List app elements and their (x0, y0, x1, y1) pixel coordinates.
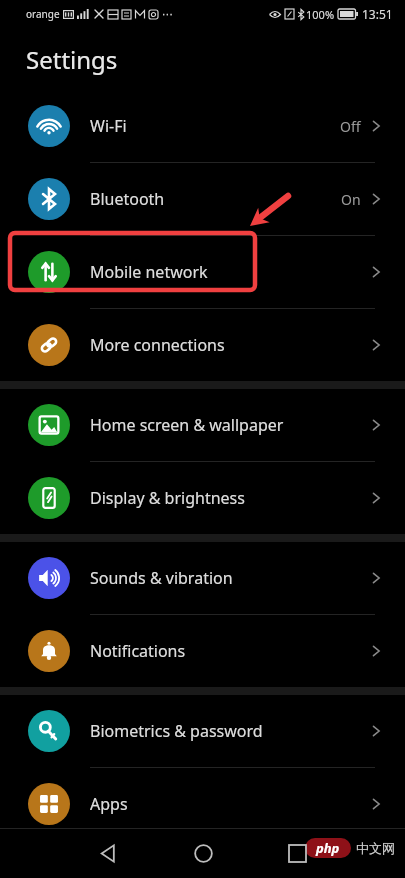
staticText: More connections (90, 334, 369, 356)
button[interactable]: Sounds & vibration (0, 542, 405, 614)
staticText: Display & brightness (90, 487, 369, 509)
button[interactable]: Biometrics & password (0, 695, 405, 767)
button[interactable]: More connections (0, 309, 405, 381)
button[interactable]: Notifications (0, 615, 405, 687)
staticText: Home screen & wallpaper (90, 414, 369, 436)
button[interactable]: Mobile network (0, 236, 405, 308)
staticText: Notifications (90, 640, 369, 662)
button[interactable]: Recent apps (275, 831, 319, 875)
staticText: On (341, 190, 361, 209)
staticText: orange (26, 7, 60, 21)
button[interactable]: Apps (0, 768, 405, 840)
staticText: Apps (90, 793, 369, 815)
staticText: 中文网 (356, 840, 395, 856)
button[interactable]: Display & brightness (0, 462, 405, 534)
staticText: Wi-Fi (90, 115, 340, 137)
staticText: Off (340, 117, 361, 136)
staticText: Bluetooth (90, 188, 341, 210)
staticText: Mobile network (90, 261, 369, 283)
staticText: Sounds & vibration (90, 567, 369, 589)
button[interactable]: Wi-Fi (0, 90, 405, 162)
staticText: Settings (26, 43, 118, 76)
staticText: ⋯ (162, 8, 173, 21)
staticText: 100% (306, 7, 335, 22)
staticText: 13:51 (362, 6, 393, 22)
button[interactable]: Home screen & wallpaper (0, 389, 405, 461)
button[interactable]: Bluetooth (0, 163, 405, 235)
button[interactable]: Home (181, 831, 225, 875)
button[interactable]: Back (86, 831, 130, 875)
staticText: Biometrics & password (90, 720, 369, 742)
staticText: php (316, 839, 340, 857)
